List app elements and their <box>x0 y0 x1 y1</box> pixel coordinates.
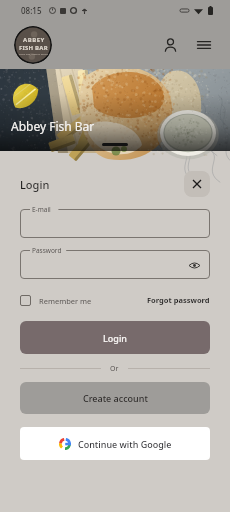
staticText: Fresh Fish, Chips & Drinks <box>19 52 48 55</box>
button[interactable]: Show password <box>186 257 202 273</box>
button[interactable]: Account <box>156 31 184 59</box>
staticText: Remember me <box>39 296 92 306</box>
button[interactable]: Abbey Fish Bar home <box>14 26 52 64</box>
staticText: ABBEY <box>23 36 45 44</box>
staticText: 08:15 <box>21 5 42 16</box>
button[interactable]: Continue with Google <box>20 427 210 460</box>
staticText: Create account <box>83 392 148 404</box>
button[interactable]: Password <box>20 250 210 279</box>
staticText: Password <box>32 246 62 255</box>
button[interactable]: E-mail <box>20 209 210 238</box>
staticText: E-mail <box>32 205 51 214</box>
staticText: Abbey Fish Bar <box>11 118 95 134</box>
button[interactable]: Remember me <box>20 295 92 306</box>
button[interactable]: Menu <box>190 31 218 59</box>
button[interactable]: Create account <box>20 382 210 414</box>
staticText: Login <box>20 177 50 192</box>
staticText: Forgot password <box>147 295 210 305</box>
button[interactable]: Forgot password <box>147 295 210 305</box>
staticText: Login <box>103 332 127 344</box>
staticText: Or <box>110 364 119 374</box>
staticText: FISH BAR <box>19 44 48 52</box>
staticText: Continue with Google <box>78 438 172 450</box>
button[interactable]: Login <box>20 321 210 354</box>
button[interactable]: Close <box>184 171 210 197</box>
